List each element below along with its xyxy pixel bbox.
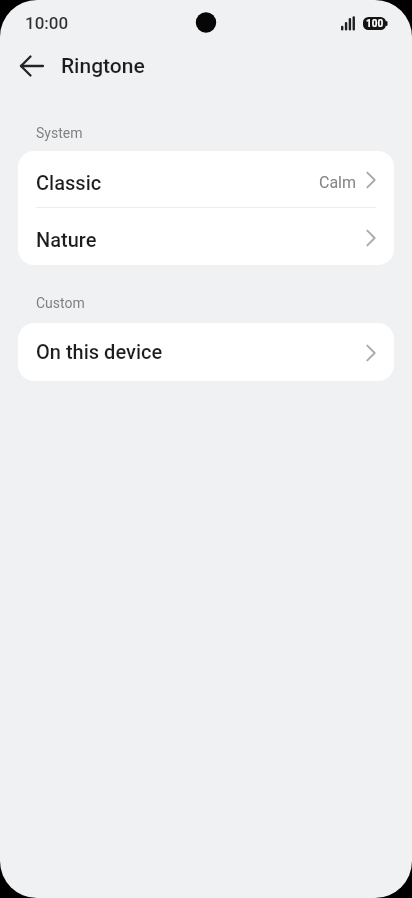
staticText: 10:00	[25, 13, 69, 33]
button[interactable]: Nature	[18, 208, 394, 265]
button[interactable]: Classic	[18, 151, 394, 207]
staticText: 100	[366, 18, 384, 30]
button[interactable]: On this device	[18, 323, 394, 381]
staticText: Calm	[319, 173, 357, 192]
staticText: Custom	[36, 295, 85, 311]
staticText: System	[36, 125, 83, 141]
staticText: Classic	[36, 171, 102, 194]
button[interactable]	[12, 46, 52, 86]
staticText: On this device	[36, 340, 163, 363]
staticText: Nature	[36, 228, 97, 251]
staticText: Ringtone	[61, 54, 145, 79]
